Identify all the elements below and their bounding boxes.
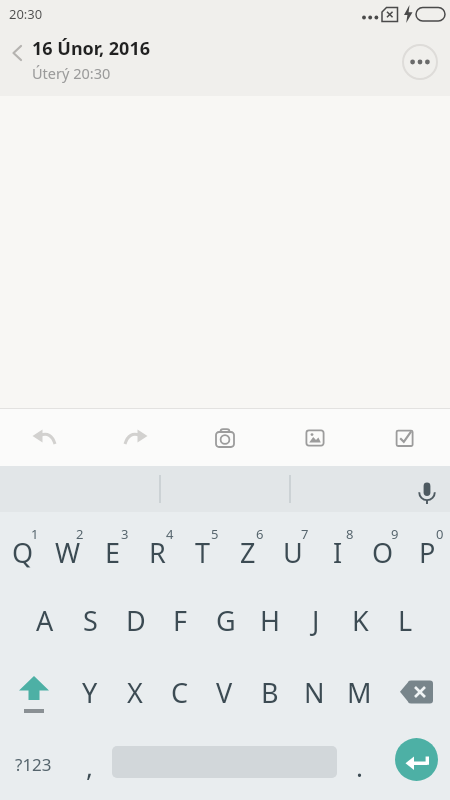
staticText: H [260,602,281,639]
staticText: G [216,602,236,639]
button[interactable]: . [337,728,382,800]
staticText: U [283,534,303,571]
staticText: . [356,749,363,784]
button[interactable]: N [292,656,337,728]
button[interactable]: T [180,512,225,584]
staticText: 9 [391,525,399,543]
button[interactable]: C [157,656,202,728]
button[interactable] [395,738,438,781]
button[interactable]: Y [67,656,112,728]
staticText: V [216,674,233,711]
button[interactable]: J [293,584,338,656]
staticText: C [171,674,189,711]
button[interactable]: E [90,512,135,584]
staticText: W [55,534,81,571]
staticText: Úterý 20:30 [32,63,111,83]
staticText: 2 [76,525,84,543]
staticText: 5 [211,525,219,543]
button[interactable]: I [315,512,360,584]
button[interactable]: B [247,656,292,728]
button[interactable]: W [45,512,90,584]
button[interactable]: G [203,584,248,656]
button[interactable]: K [338,584,383,656]
staticText: O [372,534,394,571]
staticText: S [83,602,98,639]
button[interactable]: H [248,584,293,656]
staticText: D [126,602,146,639]
button[interactable] [382,728,450,800]
button[interactable] [0,409,90,466]
button[interactable] [180,409,270,466]
button[interactable]: F [158,584,203,656]
staticText: 16 Únor, 2016 [32,36,150,61]
staticText: T [195,534,211,571]
button[interactable]: M [337,656,382,728]
staticText: B [261,674,279,711]
staticText: R [149,534,166,571]
staticText: N [304,674,325,711]
button[interactable]: D [113,584,158,656]
button[interactable] [112,728,337,800]
staticText: Y [82,674,98,711]
staticText: Q [12,534,34,571]
staticText: M [347,674,372,711]
button[interactable]: A [22,584,68,656]
button[interactable]: L [383,584,428,656]
button[interactable] [410,472,444,506]
button[interactable]: V [202,656,247,728]
staticText: 1 [31,525,39,543]
button[interactable] [90,409,180,466]
staticText: J [312,602,320,639]
button[interactable]: P [405,512,450,584]
staticText: K [352,602,369,639]
staticText: F [173,602,188,639]
button[interactable]: S [68,584,113,656]
staticText: 4 [166,525,174,543]
button[interactable] [402,44,438,80]
button[interactable]: , [67,728,112,800]
staticText: ?123 [15,753,52,776]
staticText: X [127,674,143,711]
staticText: E [105,534,121,571]
button[interactable]: R [135,512,180,584]
button[interactable]: U [270,512,315,584]
button[interactable]: X [112,656,157,728]
button[interactable] [360,409,450,466]
staticText: 0 [436,525,444,543]
staticText: 6 [256,525,264,543]
staticText: 20:30 [9,5,43,23]
staticText: A [36,602,54,639]
staticText: P [419,534,436,571]
staticText: L [398,602,413,639]
staticText: 7 [301,525,309,543]
button[interactable] [270,409,360,466]
button[interactable] [0,656,67,728]
button[interactable]: Z [225,512,270,584]
button[interactable] [4,33,30,73]
staticText: , [86,749,93,784]
button[interactable]: O [360,512,405,584]
button[interactable]: ?123 [0,728,67,800]
button[interactable]: Q [0,512,45,584]
staticText: Z [240,534,256,571]
staticText: 3 [121,525,129,543]
button[interactable] [382,656,450,728]
staticText: 8 [346,525,354,543]
staticText: I [333,534,343,571]
